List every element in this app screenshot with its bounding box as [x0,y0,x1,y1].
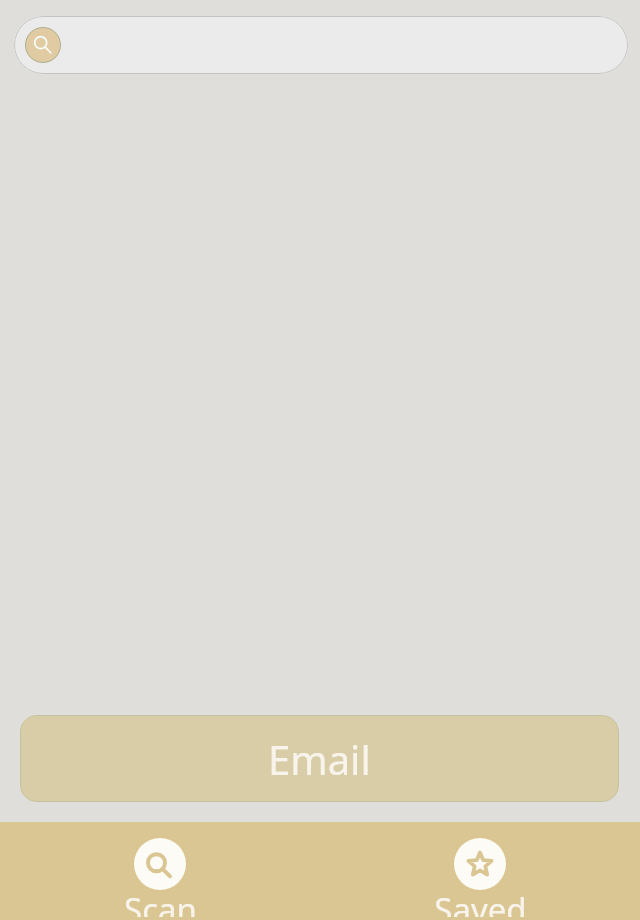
button[interactable]: Search [25,27,61,63]
button[interactable]: Saved [320,822,640,920]
staticText: Saved [434,887,527,917]
button[interactable]: Email [20,715,619,802]
button[interactable]: Scan [0,822,320,920]
button[interactable]: Search [14,16,628,74]
staticText: Scan [124,887,197,917]
staticText: Email [268,732,371,786]
